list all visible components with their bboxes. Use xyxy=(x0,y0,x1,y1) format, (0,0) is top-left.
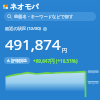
staticText: ネオモバ xyxy=(10,2,39,11)
button[interactable]: 500,000 xyxy=(0,68,100,98)
button[interactable]: 491,874 xyxy=(5,34,67,54)
staticText: 評価損益 xyxy=(11,58,27,63)
other: Chart toggle xyxy=(7,59,10,62)
staticText: 400,000 xyxy=(88,81,99,85)
staticText: 491,874 xyxy=(5,34,61,54)
staticText: 最近の状況 (12/30) xyxy=(5,26,41,32)
staticText: +69,647円 (+16.51%) xyxy=(33,58,78,64)
other: Search xyxy=(7,14,12,19)
staticText: 500,000 xyxy=(88,70,99,74)
button[interactable]: Chart toggle xyxy=(4,57,30,64)
staticText: 円 xyxy=(62,47,67,53)
button[interactable]: App logo xyxy=(0,0,100,12)
other: Info xyxy=(43,27,47,31)
other: App logo xyxy=(3,4,8,9)
button[interactable]: 最近の状況 (12/30) xyxy=(5,26,47,32)
staticText: 銘柄名・キーワードなどで探す xyxy=(14,14,74,19)
button[interactable]: Search xyxy=(4,12,96,21)
